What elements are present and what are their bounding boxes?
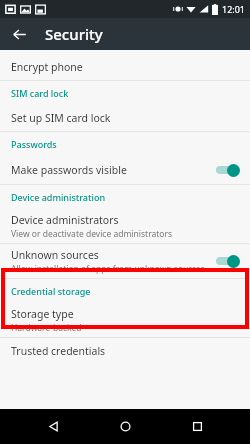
staticText: Make passwords visible [11, 163, 215, 177]
staticText: Encrypt phone [11, 60, 83, 74]
button[interactable]: Unknown sources [0, 244, 250, 278]
staticText: Hardware-backed [11, 322, 82, 334]
button[interactable]: Storage type [0, 303, 250, 337]
button[interactable]: Encrypt phone [0, 54, 250, 80]
button[interactable]: Back [34, 409, 72, 444]
button[interactable]: Set up SIM card lock [0, 105, 250, 131]
staticText: Security [45, 24, 103, 44]
button[interactable]: Back [7, 22, 31, 46]
staticText: View or deactivate device administrators [11, 228, 173, 240]
button[interactable]: Toggle on [215, 253, 241, 269]
button[interactable]: Home [106, 409, 144, 444]
button[interactable]: Recent apps [178, 409, 216, 444]
staticText: 12:01 [222, 3, 246, 15]
staticText: Set up SIM card lock [11, 111, 111, 125]
staticText: Device administration [11, 191, 106, 203]
staticText: Credential storage [11, 285, 91, 297]
staticText: Unknown sources [11, 248, 99, 262]
button[interactable]: Device administrators [0, 209, 250, 243]
staticText: Passwords [11, 138, 57, 150]
staticText: Trusted credentials [11, 344, 106, 358]
staticText: SIM card lock [11, 87, 69, 99]
button[interactable]: Trusted credentials [0, 338, 250, 364]
staticText: Storage type [11, 307, 74, 321]
staticText: Allow installation of apps from unknown … [11, 263, 205, 275]
staticText: Device administrators [11, 213, 119, 227]
button[interactable]: Make passwords visible [0, 156, 250, 184]
button[interactable]: Toggle on [215, 162, 241, 178]
